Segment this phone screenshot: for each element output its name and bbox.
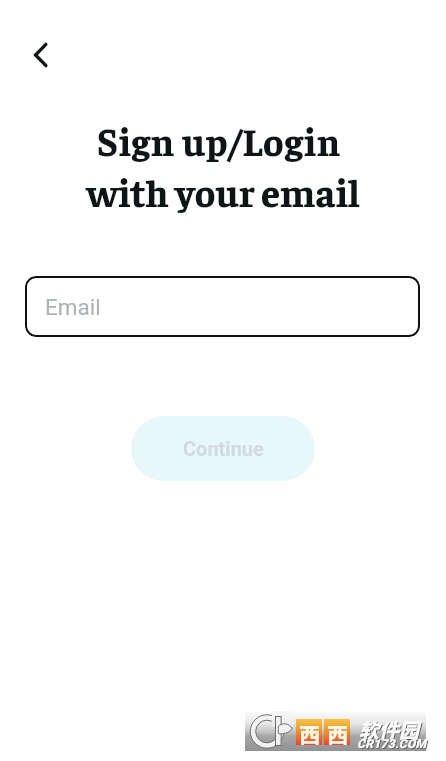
staticText: 西 bbox=[299, 719, 320, 745]
staticText: CR173.COM bbox=[357, 737, 427, 751]
button[interactable]: Continue bbox=[131, 416, 315, 481]
staticText: CR173.COM bbox=[358, 738, 428, 752]
staticText: Continue bbox=[183, 437, 264, 460]
staticText: Email bbox=[45, 294, 101, 320]
staticText: Sign up/Login bbox=[0, 116, 442, 164]
button[interactable]: Back bbox=[19, 32, 65, 78]
button[interactable]: Email bbox=[25, 276, 420, 337]
staticText: 西 bbox=[327, 719, 348, 745]
staticText: with your email bbox=[0, 167, 446, 215]
staticText: 软件园 bbox=[359, 715, 419, 744]
staticText: 软件园 bbox=[360, 716, 420, 745]
